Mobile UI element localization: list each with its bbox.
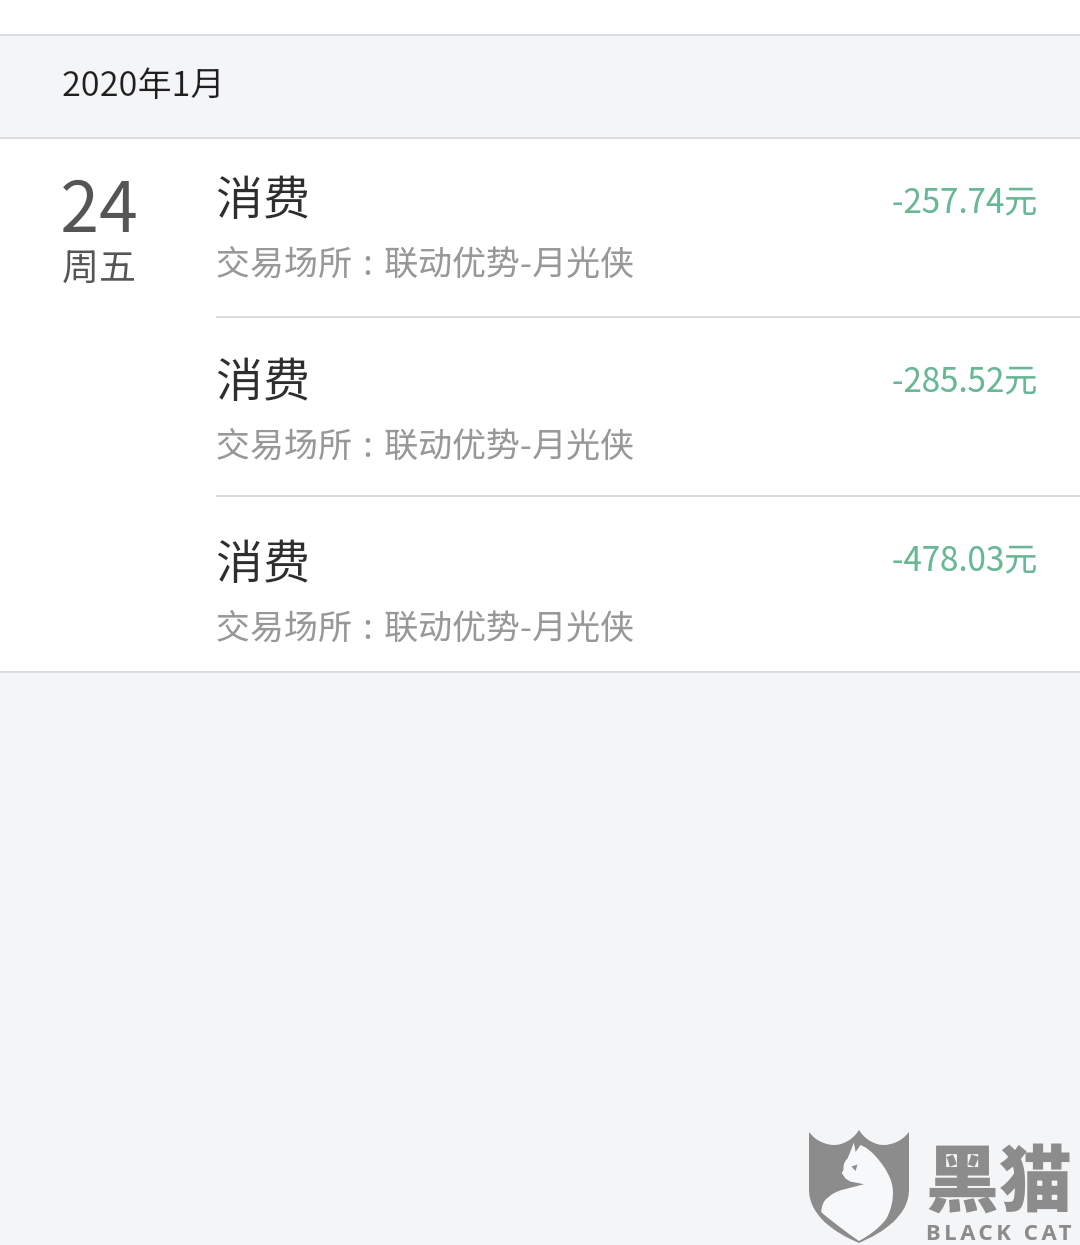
button[interactable]: 消费 bbox=[0, 503, 1080, 671]
button[interactable]: 消费 bbox=[0, 139, 1080, 316]
staticText: 交易场所 : 联动优势-月光侠 bbox=[216, 600, 634, 649]
staticText: -257.74元 bbox=[892, 175, 1038, 223]
staticText: 黑猫 bbox=[926, 1121, 1072, 1227]
staticText: 24 bbox=[60, 151, 138, 252]
staticText: 2020年1月 bbox=[62, 57, 225, 106]
staticText: 消费 bbox=[216, 160, 310, 228]
staticText: 交易场所 : 联动优势-月光侠 bbox=[216, 236, 634, 285]
staticText: 周五 bbox=[62, 237, 136, 291]
other: 黑猫投诉 Black Cat watermark bbox=[800, 1120, 1080, 1245]
button[interactable]: 消费 bbox=[0, 321, 1080, 500]
staticText: 交易场所 : 联动优势-月光侠 bbox=[216, 418, 634, 467]
staticText: 消费 bbox=[216, 524, 310, 592]
staticText: 消费 bbox=[216, 342, 310, 410]
staticText: BLACK CAT bbox=[926, 1216, 1076, 1245]
staticText: -478.03元 bbox=[892, 533, 1038, 581]
staticText: -285.52元 bbox=[892, 354, 1038, 402]
